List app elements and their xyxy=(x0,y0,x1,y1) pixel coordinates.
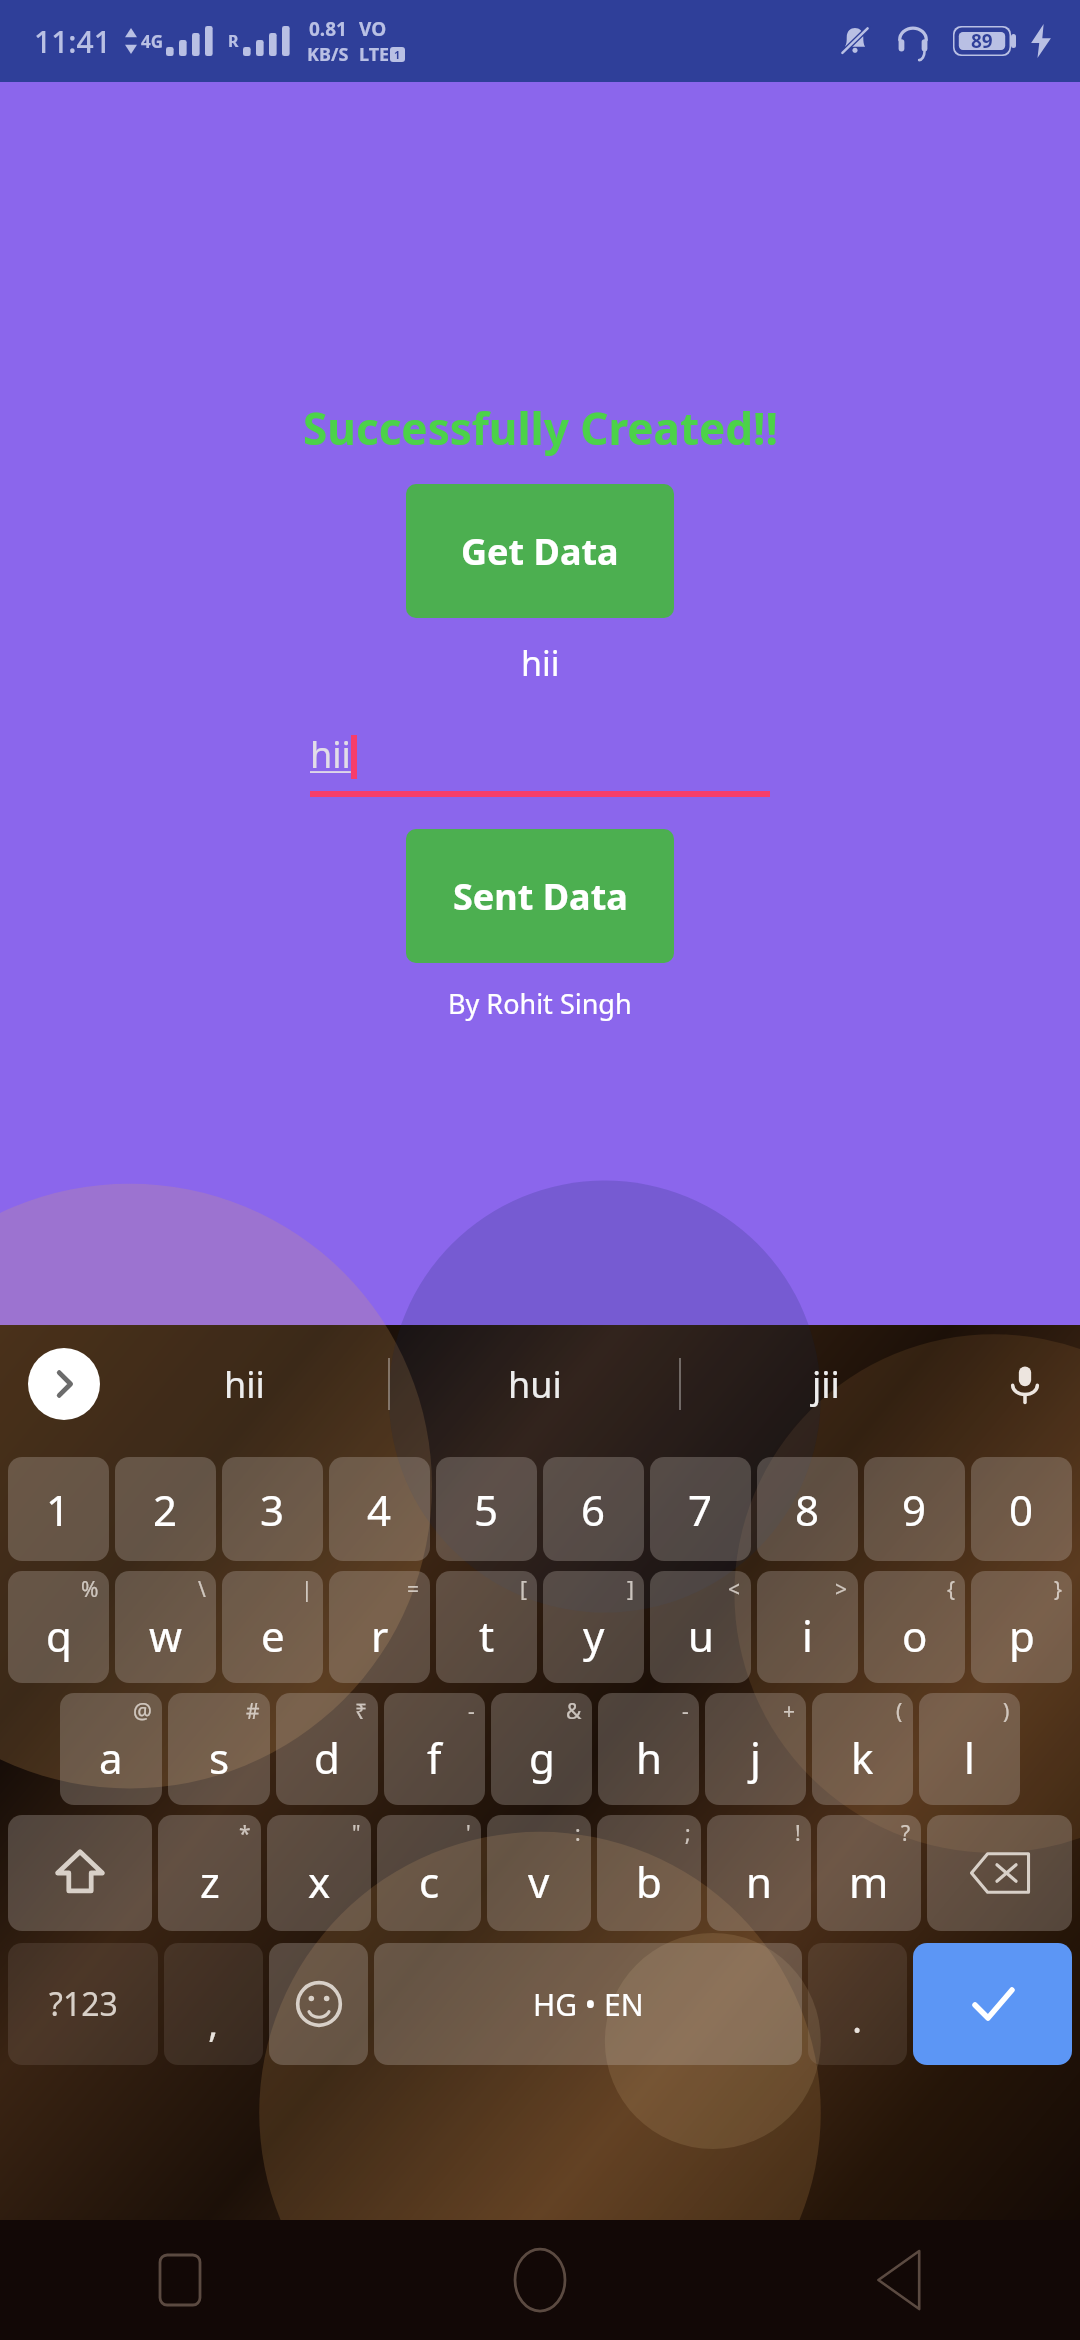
staticText: hui xyxy=(508,1360,562,1409)
button[interactable]: . xyxy=(808,1943,907,2065)
staticText: ?123 xyxy=(49,1982,118,2026)
staticText: b xyxy=(636,1853,662,1910)
staticText: n xyxy=(746,1853,772,1910)
staticText: z xyxy=(200,1853,220,1910)
staticText: ! xyxy=(795,1819,801,1848)
button[interactable]: 7 xyxy=(650,1457,751,1561)
button[interactable]: ' xyxy=(377,1815,481,1931)
button[interactable]: - xyxy=(384,1693,485,1805)
button[interactable]: hui xyxy=(390,1325,679,1443)
staticText: Sent Data xyxy=(453,872,628,921)
button[interactable]: Recent apps xyxy=(0,2220,360,2340)
staticText: 9 xyxy=(902,1481,927,1538)
staticText: Successfully Created!! xyxy=(303,398,778,458)
button[interactable]: 0 xyxy=(971,1457,1072,1561)
staticText: ? xyxy=(901,1819,911,1848)
staticText: m xyxy=(849,1853,889,1910)
button[interactable]: [ xyxy=(436,1571,537,1683)
button[interactable]: " xyxy=(267,1815,371,1931)
button[interactable]: @ xyxy=(60,1693,162,1805)
button[interactable]: Backspace xyxy=(927,1815,1072,1931)
button[interactable]: Get Data xyxy=(406,484,674,618)
staticText: l xyxy=(964,1729,975,1786)
button[interactable]: hii xyxy=(100,1325,388,1443)
staticText: d xyxy=(314,1729,340,1786)
button[interactable]: ; xyxy=(597,1815,701,1931)
button[interactable]: > xyxy=(757,1571,858,1683)
button[interactable]: & xyxy=(491,1693,592,1805)
button[interactable]: jii xyxy=(681,1325,970,1443)
staticText: ₹ xyxy=(355,1697,368,1726)
staticText: - xyxy=(468,1697,475,1726)
button[interactable]: Home xyxy=(360,2220,720,2340)
button[interactable]: 8 xyxy=(757,1457,858,1561)
button[interactable]: 6 xyxy=(543,1457,644,1561)
staticText: % xyxy=(81,1575,99,1604)
staticText: + xyxy=(783,1697,796,1726)
staticText: \ xyxy=(198,1575,206,1604)
button[interactable]: + xyxy=(705,1693,806,1805)
button[interactable]: { xyxy=(864,1571,965,1683)
staticText: o xyxy=(902,1607,928,1664)
button[interactable]: ( xyxy=(812,1693,913,1805)
staticText: 7 xyxy=(688,1481,713,1538)
staticText: r xyxy=(371,1607,389,1664)
button[interactable]: = xyxy=(329,1571,430,1683)
staticText: ; xyxy=(685,1819,691,1848)
button[interactable]: , xyxy=(164,1943,263,2065)
staticText: * xyxy=(239,1819,251,1848)
button[interactable]: Enter xyxy=(913,1943,1072,2065)
staticText: [ xyxy=(520,1575,527,1604)
button[interactable]: 4 xyxy=(329,1457,430,1561)
staticText: v xyxy=(528,1853,550,1910)
button[interactable]: Back xyxy=(720,2220,1080,2340)
button[interactable]: * xyxy=(158,1815,261,1931)
staticText: > xyxy=(835,1575,848,1604)
button[interactable]: Sent Data xyxy=(406,829,674,963)
button[interactable]: ] xyxy=(543,1571,644,1683)
button[interactable]: 3 xyxy=(222,1457,323,1561)
staticText: c xyxy=(419,1853,440,1910)
button[interactable]: < xyxy=(650,1571,751,1683)
staticText: x xyxy=(308,1853,331,1910)
button[interactable]: | xyxy=(222,1571,323,1683)
button[interactable]: : xyxy=(487,1815,591,1931)
staticText: f xyxy=(427,1729,442,1786)
button[interactable]: Voice input xyxy=(970,1325,1080,1443)
button[interactable]: ? xyxy=(817,1815,921,1931)
button[interactable]: # xyxy=(168,1693,270,1805)
button[interactable]: ) xyxy=(919,1693,1020,1805)
staticText: q xyxy=(46,1607,72,1664)
staticText: , xyxy=(208,1996,219,2048)
button[interactable]: 1 xyxy=(8,1457,109,1561)
staticText: j xyxy=(750,1729,761,1786)
button[interactable]: } xyxy=(971,1571,1072,1683)
staticText: . xyxy=(852,1992,863,2044)
staticText: By Rohit Singh xyxy=(448,985,632,1022)
button[interactable]: 5 xyxy=(436,1457,537,1561)
staticText: y xyxy=(583,1607,605,1664)
staticText: hii xyxy=(310,730,351,779)
button[interactable]: ! xyxy=(707,1815,811,1931)
button[interactable]: % xyxy=(8,1571,109,1683)
button[interactable]: ₹ xyxy=(276,1693,378,1805)
staticText: jii xyxy=(812,1360,840,1409)
button[interactable]: \ xyxy=(115,1571,216,1683)
staticText: 4 xyxy=(367,1481,392,1538)
button[interactable]: 9 xyxy=(864,1457,965,1561)
button[interactable]: 2 xyxy=(115,1457,216,1561)
staticText: 3 xyxy=(260,1481,285,1538)
staticText: 0 xyxy=(1009,1481,1034,1538)
button[interactable]: Shift xyxy=(8,1815,152,1931)
button[interactable]: Emoji xyxy=(269,1943,368,2065)
button[interactable]: ?123 xyxy=(8,1943,158,2065)
staticText: ( xyxy=(896,1697,903,1726)
staticText: 6 xyxy=(581,1481,606,1538)
staticText: a xyxy=(99,1729,123,1786)
button[interactable]: Expand suggestions xyxy=(28,1348,100,1420)
staticText: g xyxy=(529,1729,555,1786)
staticText: = xyxy=(407,1575,420,1604)
button[interactable]: - xyxy=(598,1693,699,1805)
staticText: LTE xyxy=(359,42,390,67)
button[interactable]: HG • EN xyxy=(374,1943,802,2065)
